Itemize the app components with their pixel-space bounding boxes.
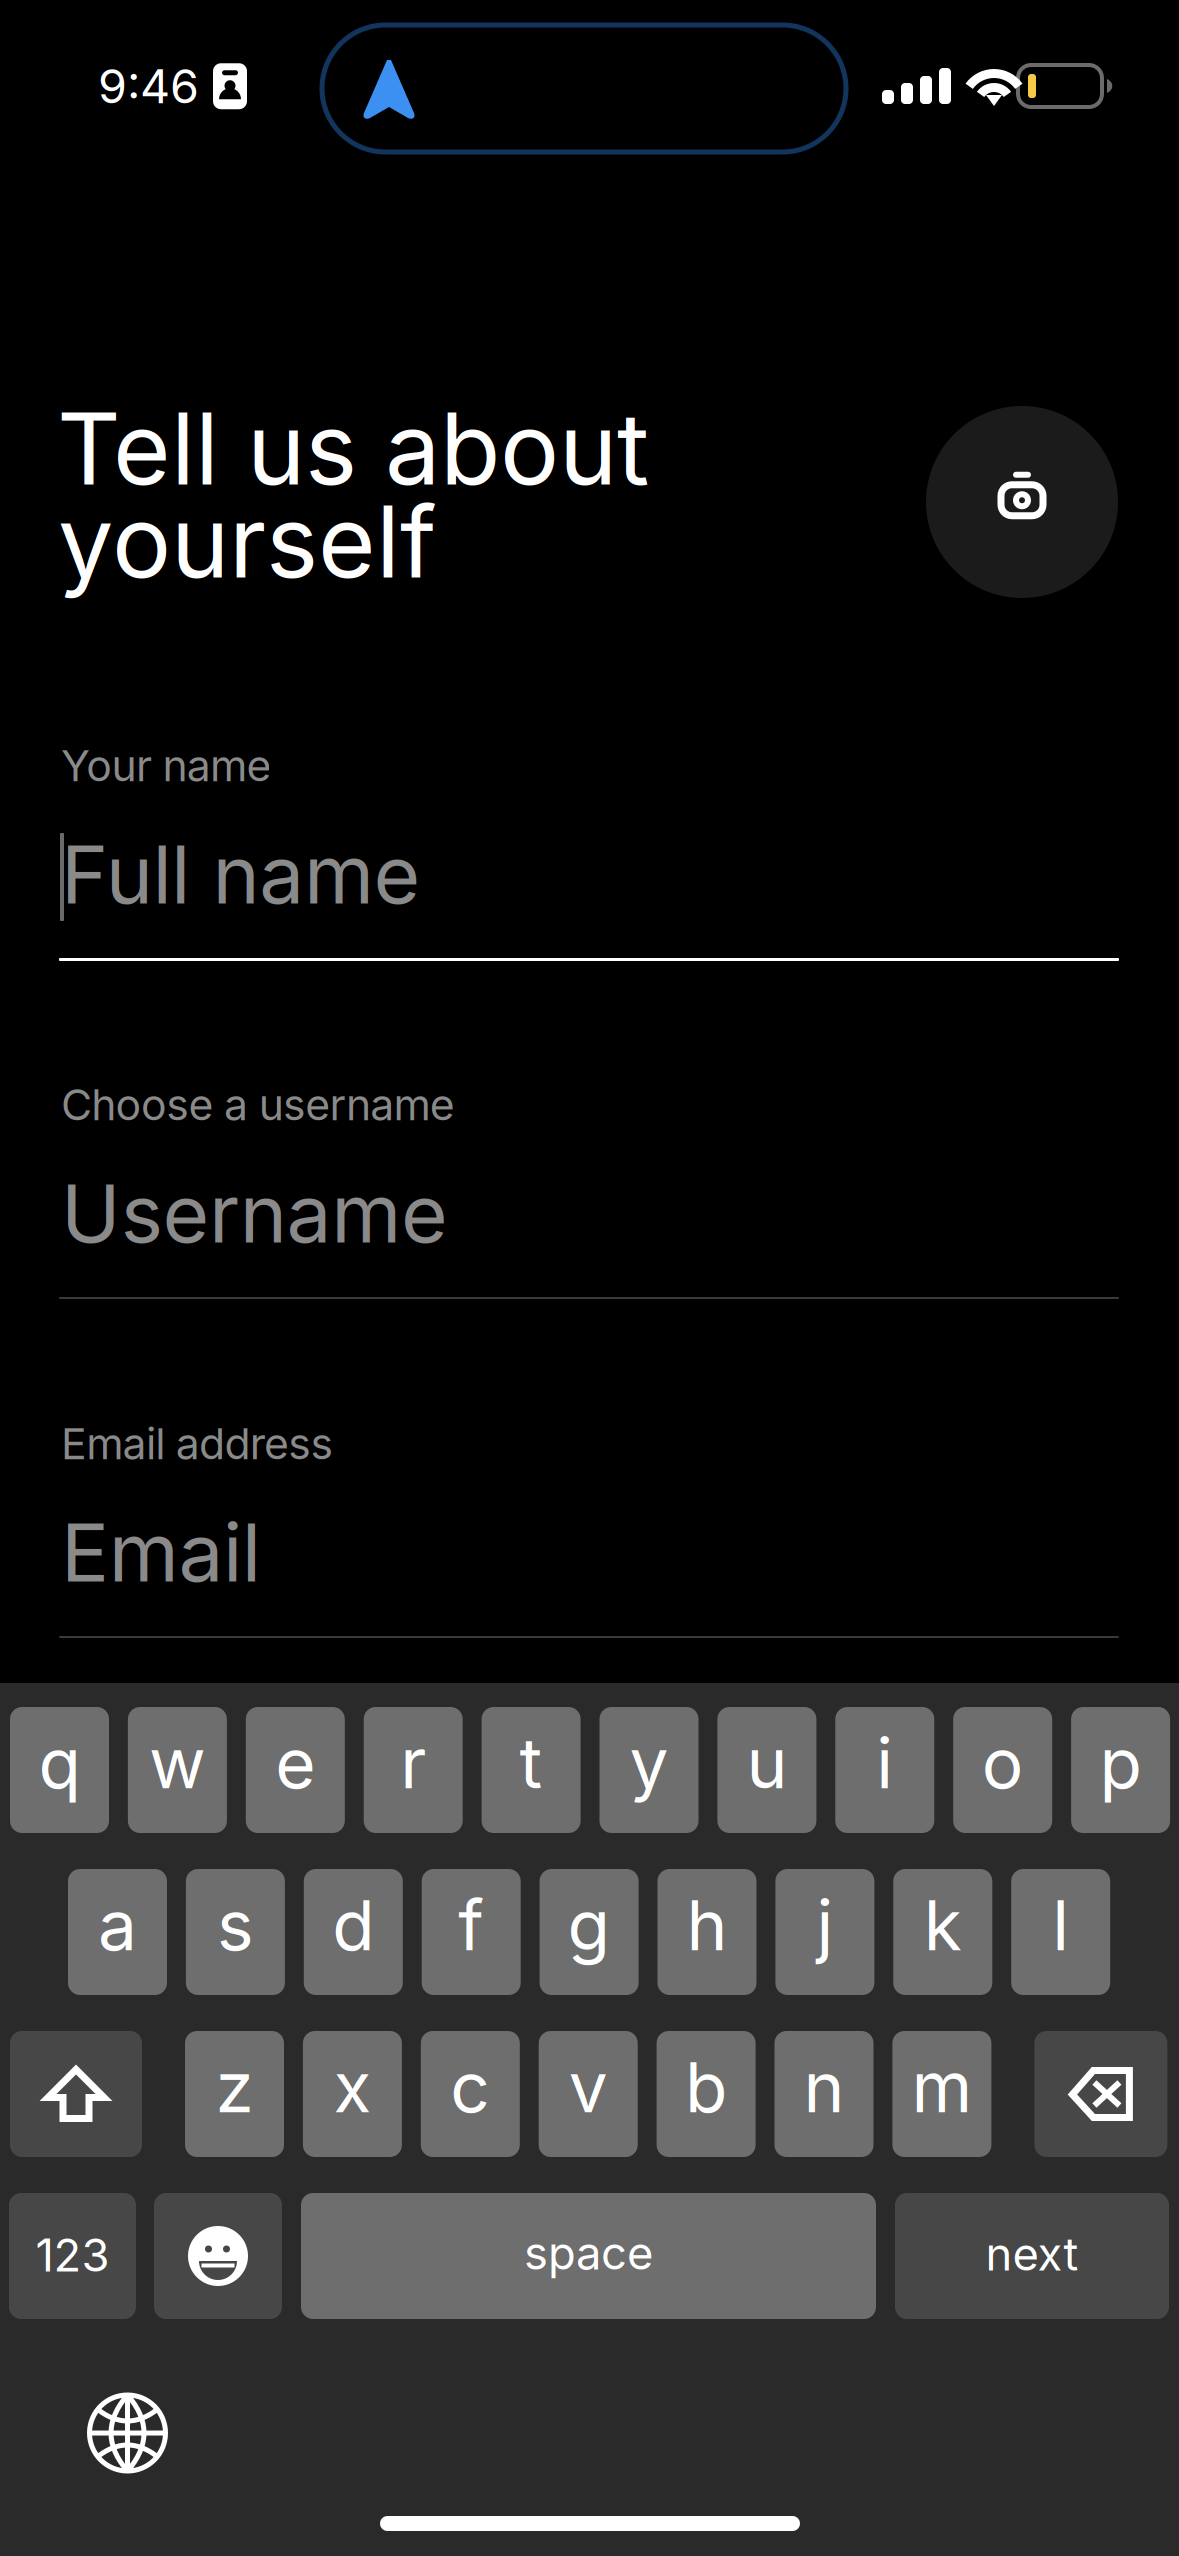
staticText: b — [685, 2045, 727, 2129]
staticText: Tell us about — [57, 389, 649, 508]
staticText: Your name — [61, 740, 271, 792]
button[interactable]: q — [10, 1707, 109, 1833]
button[interactable]: 123 — [9, 2193, 136, 2319]
button[interactable]: u — [717, 1707, 816, 1833]
button[interactable]: h — [657, 1869, 756, 1995]
button[interactable]: b — [657, 2031, 756, 2157]
staticText: r — [400, 1721, 426, 1805]
button[interactable]: t — [482, 1707, 581, 1833]
staticText: u — [746, 1721, 787, 1805]
staticText: o — [982, 1721, 1024, 1805]
button[interactable]: space — [301, 2193, 876, 2319]
staticText: c — [450, 2045, 490, 2129]
staticText: t — [520, 1721, 543, 1805]
button[interactable]: Shift — [10, 2031, 142, 2157]
button[interactable]: next — [895, 2193, 1169, 2319]
button[interactable]: k — [893, 1869, 992, 1995]
staticText: d — [332, 1883, 374, 1967]
staticText: n — [803, 2045, 844, 2129]
button[interactable]: s — [186, 1869, 285, 1995]
staticText: s — [217, 1883, 254, 1967]
button[interactable]: i — [835, 1707, 934, 1833]
staticText: m — [911, 2045, 972, 2129]
button[interactable]: Switch keyboard — [67, 2378, 187, 2488]
staticText: e — [275, 1721, 315, 1805]
staticText: w — [149, 1721, 206, 1805]
button[interactable]: m — [892, 2031, 991, 2157]
staticText: yourself — [58, 482, 437, 601]
button[interactable]: r — [364, 1707, 463, 1833]
staticText: y — [629, 1721, 668, 1805]
staticText: z — [215, 2045, 253, 2129]
button[interactable]: w — [128, 1707, 227, 1833]
staticText: Email address — [61, 1418, 334, 1470]
button[interactable]: Delete — [1034, 2031, 1167, 2157]
button[interactable]: p — [1071, 1707, 1170, 1833]
button[interactable]: f — [422, 1869, 521, 1995]
staticText: a — [98, 1883, 137, 1967]
staticText: p — [1100, 1721, 1142, 1805]
staticText: h — [686, 1883, 727, 1967]
button[interactable]: a — [68, 1869, 167, 1995]
button[interactable]: o — [953, 1707, 1052, 1833]
button[interactable]: e — [246, 1707, 345, 1833]
button[interactable]: Emoji — [154, 2193, 282, 2319]
staticText: 9:46 — [98, 58, 199, 114]
button[interactable]: c — [421, 2031, 520, 2157]
staticText: j — [816, 1883, 833, 1967]
staticText: g — [568, 1883, 611, 1967]
button[interactable]: l — [1011, 1869, 1110, 1995]
button[interactable]: d — [304, 1869, 403, 1995]
button[interactable]: z — [185, 2031, 284, 2157]
staticText: q — [38, 1721, 80, 1805]
staticText: space — [524, 2226, 653, 2280]
staticText: v — [569, 2045, 608, 2129]
staticText: Email — [61, 1504, 261, 1601]
staticText: k — [924, 1883, 962, 1967]
staticText: x — [333, 2045, 371, 2129]
staticText: Full name — [61, 826, 421, 923]
button[interactable]: g — [540, 1869, 639, 1995]
staticText: Username — [61, 1165, 448, 1262]
staticText: 123 — [35, 2228, 109, 2282]
button[interactable]: Add photo — [926, 406, 1118, 598]
button[interactable]: n — [774, 2031, 873, 2157]
staticText: f — [458, 1883, 484, 1967]
button[interactable]: v — [539, 2031, 638, 2157]
staticText: Choose a username — [61, 1079, 455, 1131]
button[interactable]: j — [775, 1869, 874, 1995]
button[interactable]: y — [599, 1707, 698, 1833]
staticText: next — [985, 2227, 1078, 2281]
button[interactable]: x — [303, 2031, 402, 2157]
staticText: i — [876, 1721, 893, 1805]
staticText: l — [1052, 1883, 1069, 1967]
